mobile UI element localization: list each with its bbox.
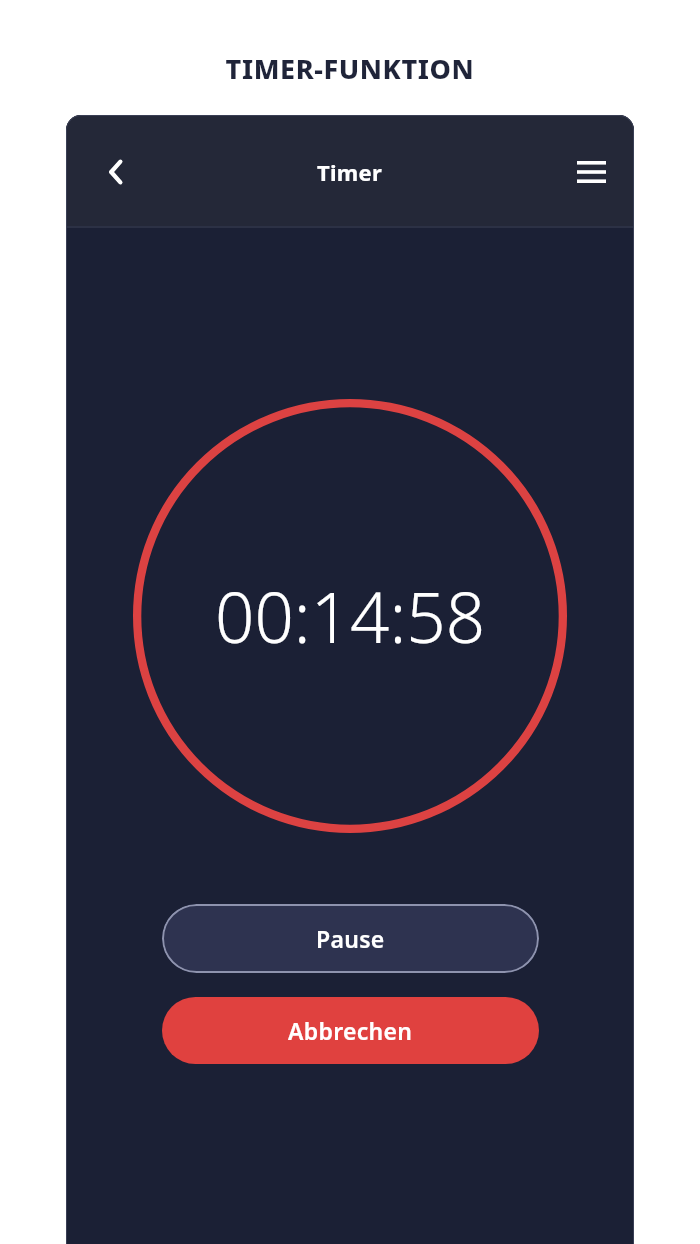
staticText: Pause bbox=[316, 923, 385, 954]
button[interactable]: Pause bbox=[162, 904, 539, 973]
button[interactable]: Menu bbox=[567, 148, 615, 196]
staticText: TIMER-FUNKTION bbox=[0, 50, 700, 87]
staticText: Timer bbox=[317, 157, 383, 187]
staticText: Abbrechen bbox=[288, 1015, 413, 1046]
button[interactable]: Back bbox=[92, 148, 140, 196]
button[interactable]: Abbrechen bbox=[162, 997, 539, 1064]
staticText: 00:14:58 bbox=[215, 569, 486, 663]
